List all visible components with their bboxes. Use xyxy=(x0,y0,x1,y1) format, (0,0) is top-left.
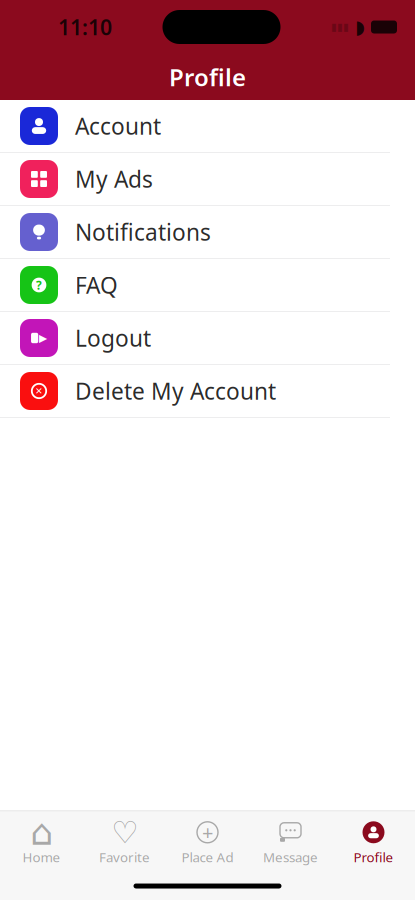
staticText: Profile xyxy=(169,61,246,93)
staticText: Place Ad xyxy=(181,848,233,866)
button[interactable]: Message xyxy=(249,811,332,872)
staticText: Home xyxy=(22,848,60,866)
button[interactable]: Home xyxy=(0,811,83,872)
staticText: FAQ xyxy=(75,270,118,300)
staticText: Message xyxy=(263,848,318,866)
button[interactable]: Profile xyxy=(332,811,415,872)
staticText: ♡ xyxy=(111,815,138,850)
button[interactable]: My Ads xyxy=(0,153,415,206)
staticText: ▮▮▮ xyxy=(331,21,349,33)
staticText: Profile xyxy=(353,848,393,866)
button[interactable]: ? xyxy=(0,259,415,312)
staticText: Delete My Account xyxy=(75,376,276,406)
staticText: ✕ xyxy=(35,386,43,396)
button[interactable]: Place Ad xyxy=(166,811,249,872)
staticText: ⌂ xyxy=(30,812,53,853)
button[interactable]: Favorite xyxy=(83,811,166,872)
button[interactable]: Account xyxy=(0,100,415,153)
staticText: ▶ xyxy=(39,332,47,344)
staticText: Account xyxy=(75,111,161,141)
staticText: ◗ xyxy=(355,16,365,38)
button[interactable]: ✕ xyxy=(0,365,415,418)
staticText: My Ads xyxy=(75,164,153,194)
staticText: Favorite xyxy=(99,848,150,866)
button[interactable]: Notifications xyxy=(0,206,415,259)
button[interactable]: ▶ xyxy=(0,312,415,365)
staticText: + xyxy=(202,819,213,846)
staticText: Notifications xyxy=(75,217,211,247)
staticText: Logout xyxy=(75,323,151,353)
staticText: ? xyxy=(36,277,42,293)
staticText: 11:10 xyxy=(58,13,112,41)
